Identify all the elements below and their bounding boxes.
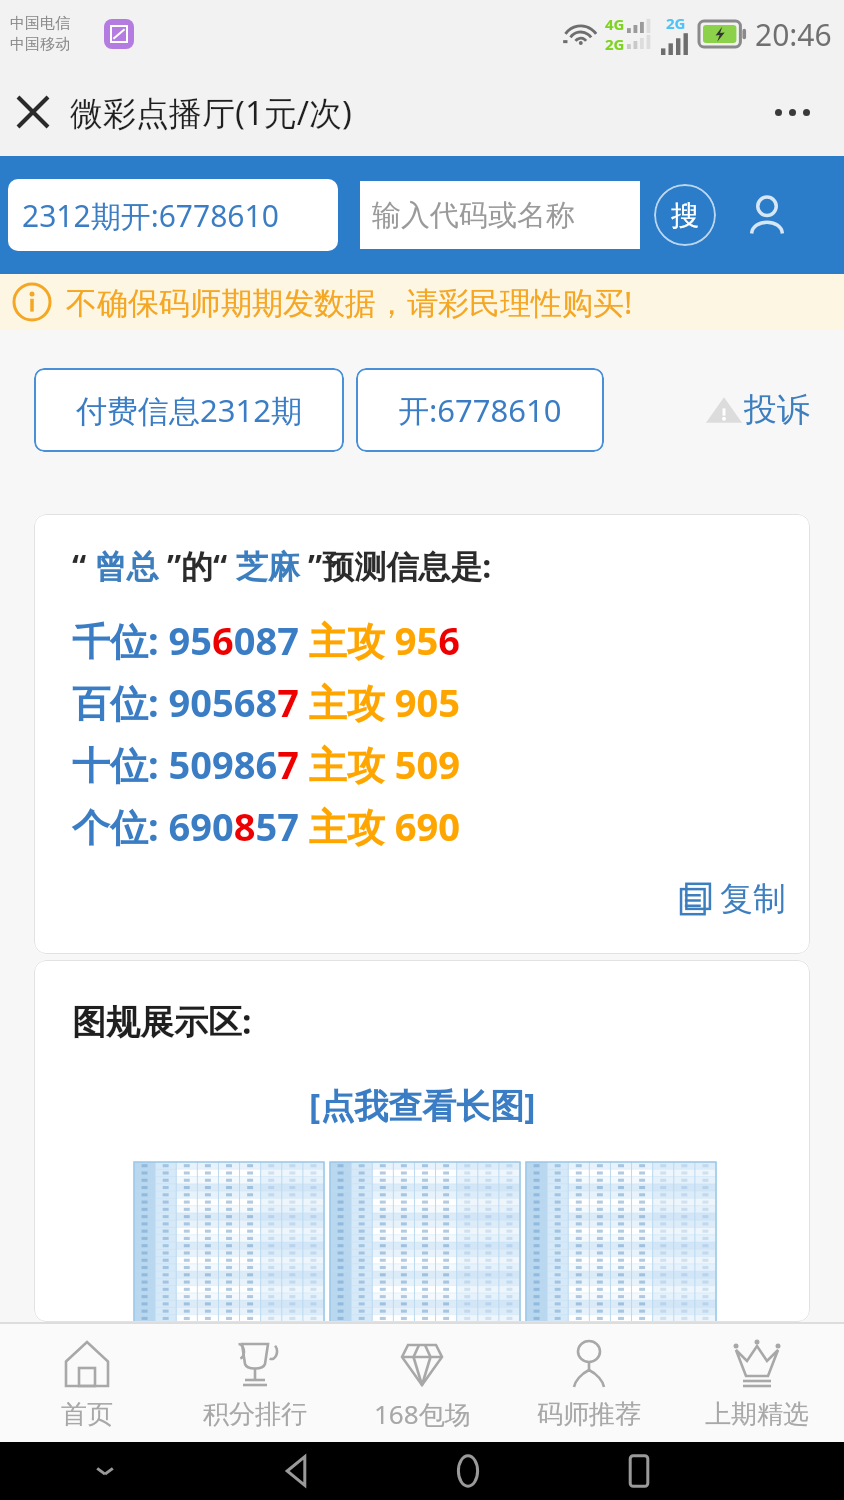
staticText: 千位: 956087 主攻 956 — [72, 614, 460, 666]
staticText: “ 曾总 ”的“ 芝麻 ”预测信息是: — [72, 544, 492, 588]
button[interactable]: 复制 — [678, 878, 786, 920]
staticText: 20:46 — [755, 14, 832, 55]
staticText: 上期精选 — [705, 1398, 809, 1431]
staticText: 168包场 — [374, 1396, 471, 1432]
staticText: 付费信息2312期 — [76, 389, 302, 431]
button[interactable]: 首页 — [7, 1324, 167, 1442]
staticText: 中国移动 — [10, 35, 70, 54]
staticText: 百位: 905687 主攻 905 — [72, 676, 460, 728]
button[interactable]: Home — [382, 1442, 553, 1500]
button[interactable]: 开:6778610 — [356, 368, 604, 452]
button[interactable]: 投诉 — [704, 389, 810, 431]
staticText: 图规展示区: — [72, 998, 252, 1044]
button[interactable]: More options — [762, 82, 822, 142]
button[interactable]: [点我查看长图] — [309, 1082, 536, 1128]
staticText: 投诉 — [744, 389, 810, 431]
staticText: 2G — [666, 13, 686, 33]
staticText: 个位: 690857 主攻 690 — [72, 800, 460, 852]
staticText: 中国电信 — [10, 14, 70, 33]
staticText: 码师推荐 — [537, 1398, 641, 1431]
button[interactable]: 积分排行 — [175, 1324, 335, 1442]
staticText: 4G — [605, 14, 625, 34]
staticText: 搜 — [671, 198, 699, 233]
staticText: 复制 — [720, 878, 786, 920]
button[interactable]: 付费信息2312期 — [34, 368, 344, 452]
button[interactable]: Recent apps — [553, 1442, 724, 1500]
staticText: 十位: 509867 主攻 509 — [72, 738, 460, 790]
staticText: 开:6778610 — [398, 389, 562, 431]
button[interactable]: Account — [736, 184, 798, 246]
button[interactable]: Search — [654, 184, 716, 246]
staticText: 输入代码或名称 — [372, 197, 575, 234]
staticText: 不确保码师期期发数据，请彩民理性购买! — [66, 281, 633, 323]
button[interactable]: 2312期开:6778610 — [8, 179, 338, 251]
staticText: 首页 — [61, 1398, 113, 1431]
staticText: 微彩点播厅(1元/次) — [70, 90, 352, 135]
button[interactable]: 码师推荐 — [509, 1324, 669, 1442]
button[interactable]: Back — [210, 1442, 382, 1500]
staticText: 积分排行 — [203, 1398, 307, 1431]
staticText: 2G — [605, 34, 625, 54]
button[interactable]: 168包场 — [342, 1324, 502, 1442]
button[interactable]: 上期精选 — [677, 1324, 837, 1442]
button[interactable]: Hide keyboard — [0, 1442, 210, 1500]
button[interactable]: 输入代码或名称 — [360, 181, 640, 249]
button[interactable]: Close — [0, 79, 66, 145]
staticText: 2312期开:6778610 — [22, 195, 279, 236]
